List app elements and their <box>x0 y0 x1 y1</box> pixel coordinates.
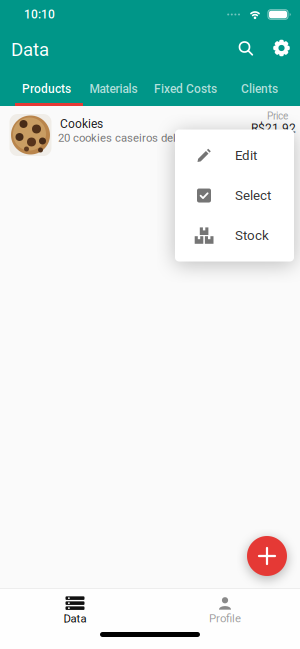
button[interactable]: Add <box>247 536 287 576</box>
button[interactable]: Search <box>228 26 262 70</box>
staticText: Clients <box>241 82 278 96</box>
button[interactable]: Select <box>175 175 294 215</box>
staticText: Price <box>267 110 288 122</box>
button[interactable]: Products <box>6 70 86 108</box>
staticText: 20 cookies caseiros deliciosos <box>58 131 212 145</box>
staticText: Materials <box>89 82 137 96</box>
staticText: Profile <box>209 612 241 625</box>
button[interactable]: Clients <box>226 70 292 108</box>
button[interactable]: Data <box>0 589 150 633</box>
staticText: Cookies <box>60 117 103 131</box>
staticText: R$21.92 <box>251 121 296 136</box>
button[interactable]: Materials <box>75 70 151 108</box>
staticText: Products <box>22 82 71 96</box>
button[interactable]: Settings <box>263 26 299 70</box>
staticText: 10:10 <box>24 7 55 22</box>
staticText: Data <box>11 39 49 60</box>
button[interactable]: Fixed Costs <box>142 70 228 108</box>
button[interactable]: Stock <box>175 215 294 255</box>
button[interactable]: Cookies <box>0 106 300 164</box>
staticText: Data <box>63 612 86 625</box>
staticText: Stock <box>235 228 269 243</box>
staticText: Fixed Costs <box>154 82 217 96</box>
staticText: Edit <box>235 148 257 163</box>
button[interactable]: Edit <box>175 135 294 175</box>
button[interactable]: Profile <box>150 589 300 633</box>
staticText: Select <box>235 188 271 203</box>
